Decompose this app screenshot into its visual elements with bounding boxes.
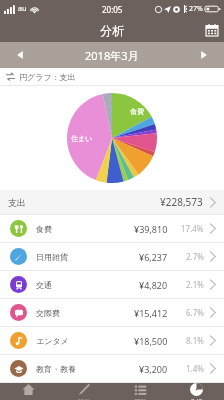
staticText: ¥4,820 <box>139 279 168 291</box>
button[interactable]: 教育・教養 <box>0 355 224 382</box>
staticText: 2.7% <box>186 251 204 262</box>
staticText: ¥18,500 <box>134 335 168 347</box>
staticText: エンタメ <box>36 336 69 346</box>
button[interactable]: 交通 <box>0 271 224 298</box>
button[interactable]: 記録 <box>56 383 112 400</box>
staticText: 日用雑貨 <box>36 252 68 262</box>
button[interactable]: エンタメ <box>0 327 224 354</box>
staticText: 履歴 <box>134 398 146 400</box>
button[interactable]: 日用雑貨 <box>0 243 224 270</box>
staticText: 交際費 <box>36 308 60 318</box>
staticText: ¥15,412 <box>134 307 168 319</box>
button[interactable]: Calendar <box>200 18 224 42</box>
staticText: 分析 <box>190 398 202 400</box>
button[interactable]: 履歴 <box>112 383 168 400</box>
button[interactable]: ホーム <box>0 383 56 400</box>
button[interactable]: 分析 <box>168 383 224 400</box>
staticText: 2018年3月 <box>85 48 139 63</box>
staticText: 17.4% <box>181 223 204 234</box>
staticText: 交通 <box>36 280 52 290</box>
staticText: 20:05 <box>102 4 123 15</box>
staticText: 支出 <box>8 197 26 208</box>
staticText: 分析 <box>100 23 124 38</box>
staticText: au <box>18 4 27 14</box>
staticText: 27% <box>189 4 203 14</box>
button[interactable]: Previous month <box>0 42 40 68</box>
staticText: 食費 <box>130 107 144 116</box>
button[interactable]: 食費 <box>0 215 224 242</box>
staticText: 教育・教養 <box>36 364 76 374</box>
staticText: 住まい <box>71 134 93 143</box>
staticText: ¥3,200 <box>139 363 168 375</box>
staticText: ¥228,573 <box>160 195 203 209</box>
staticText: 1.4% <box>186 363 204 374</box>
staticText: 記録 <box>78 398 90 400</box>
staticText: 8.1% <box>186 335 204 346</box>
button[interactable]: 交際費 <box>0 299 224 326</box>
button[interactable]: Next month <box>184 42 224 68</box>
button[interactable]: 支出 <box>0 190 224 214</box>
staticText: 6.7% <box>186 307 204 318</box>
staticText: 2.1% <box>186 279 204 290</box>
staticText: ¥39,810 <box>134 223 168 235</box>
staticText: 食費 <box>36 224 52 234</box>
button[interactable]: 円グラフ：支出 <box>0 68 224 85</box>
staticText: 円グラフ：支出 <box>19 72 76 82</box>
staticText: ¥6,237 <box>139 251 168 263</box>
